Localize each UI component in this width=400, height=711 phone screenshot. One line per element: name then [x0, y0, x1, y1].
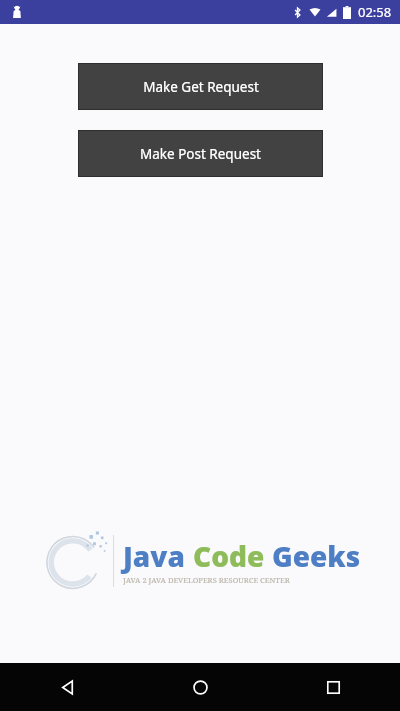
staticText: JAVA 2 JAVA DEVELOPERS RESOURCE CENTER	[123, 575, 290, 585]
staticText: Make Get Request	[143, 78, 259, 96]
button[interactable]: Make Post Request	[79, 131, 322, 176]
staticText: Make Post Request	[140, 145, 261, 163]
staticText: Java	[123, 537, 193, 575]
staticText: Geeks	[272, 537, 361, 575]
staticText: Code	[193, 537, 272, 575]
button[interactable]: Back	[0, 663, 134, 711]
staticText: 02:58	[358, 3, 392, 21]
button[interactable]: Recent apps	[267, 663, 400, 711]
button[interactable]: Make Get Request	[79, 64, 322, 109]
button[interactable]: Home	[134, 663, 267, 711]
